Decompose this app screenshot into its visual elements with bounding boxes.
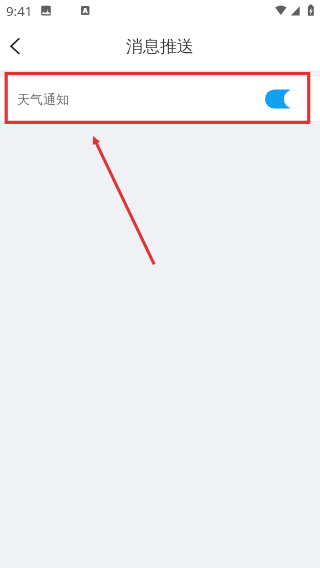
- staticText: 消息推送: [126, 36, 194, 57]
- staticText: 天气通知: [17, 91, 69, 107]
- button[interactable]: Back: [0, 23, 30, 67]
- button[interactable]: 天气通知: [0, 77, 320, 121]
- staticText: 9:41: [6, 2, 33, 20]
- button[interactable]: Weather notification toggle: [265, 89, 303, 109]
